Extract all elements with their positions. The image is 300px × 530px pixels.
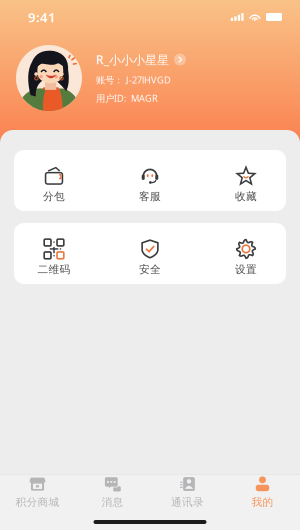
button[interactable]: R_小小小星星 [96,52,186,68]
button[interactable]: 安全 [102,217,198,290]
button[interactable]: 设置 [198,217,294,290]
staticText: 收藏 [235,190,257,203]
staticText: 9:41 [28,8,56,26]
button[interactable]: 通讯录 [150,474,225,509]
staticText: 用户ID: MAGR [96,92,158,104]
staticText: 积分商城 [15,495,59,509]
button[interactable]: 分包 [6,144,102,217]
staticText: R_小小小星星 [96,52,169,68]
button[interactable]: 消息 [75,474,150,509]
button[interactable]: 我的 [225,474,300,509]
button[interactable]: 客服 [102,144,198,217]
staticText: 客服 [139,190,161,203]
staticText: 账号： J-27lHVGD [96,74,171,86]
button[interactable]: 收藏 [198,144,294,217]
staticText: 分包 [43,190,65,203]
staticText: 设置 [235,263,257,276]
staticText: 通讯录 [171,495,204,509]
staticText: 消息 [101,495,123,509]
staticText: 二维码 [37,263,70,276]
button[interactable]: 二维码 [6,217,102,290]
button[interactable]: 积分商城 [0,474,75,509]
staticText: 安全 [139,263,161,276]
staticText: 我的 [251,495,273,509]
